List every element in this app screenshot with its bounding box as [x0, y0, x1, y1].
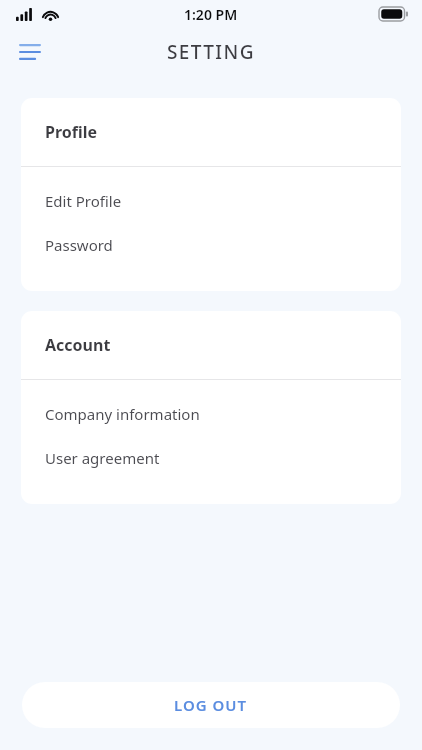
staticText: SETTING [167, 39, 255, 65]
staticText: 1:20 PM [184, 5, 238, 24]
staticText: User agreement [45, 448, 160, 468]
button[interactable]: Open navigation menu [10, 32, 50, 72]
staticText: LOG OUT [174, 695, 248, 715]
staticText: Password [45, 235, 113, 255]
staticText: Company information [45, 404, 200, 424]
button[interactable]: Password [21, 223, 401, 267]
button[interactable]: Profile [21, 98, 401, 166]
button[interactable]: Edit Profile [21, 179, 401, 223]
button[interactable]: LOG OUT [22, 682, 400, 728]
staticText: Edit Profile [45, 191, 122, 211]
button[interactable]: Account [21, 311, 401, 379]
staticText: Profile [45, 121, 98, 143]
button[interactable]: Company information [21, 392, 401, 436]
staticText: Account [45, 334, 111, 356]
button[interactable]: User agreement [21, 436, 401, 480]
